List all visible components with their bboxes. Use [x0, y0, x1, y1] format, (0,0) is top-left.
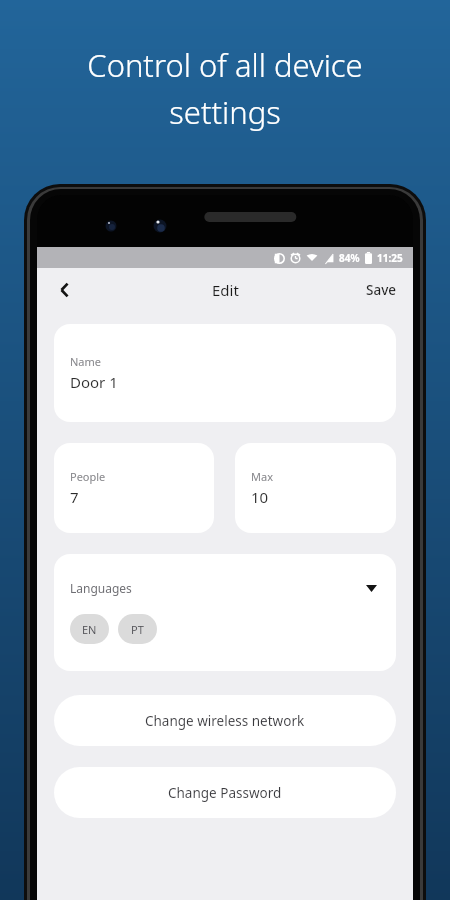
button[interactable]: EN — [70, 614, 109, 644]
button[interactable]: Max — [235, 443, 396, 533]
button[interactable]: Change wireless network — [54, 695, 396, 746]
button[interactable]: Name — [54, 324, 396, 422]
staticText: Door 1 — [70, 372, 118, 392]
staticText: 10 — [251, 487, 269, 507]
staticText: EN — [82, 622, 97, 637]
staticText: 7 — [70, 487, 79, 507]
staticText: 84% — [339, 251, 360, 265]
staticText: Name — [70, 354, 102, 369]
staticText: Max — [251, 469, 273, 484]
button[interactable]: Languages — [54, 554, 396, 671]
staticText: Change Password — [168, 784, 282, 802]
button[interactable]: Back — [48, 273, 82, 307]
staticText: Control of all device — [87, 44, 363, 86]
staticText: People — [70, 469, 106, 484]
staticText: Change wireless network — [145, 712, 305, 730]
button[interactable]: PT — [118, 614, 157, 644]
button[interactable]: Expand languages — [360, 577, 382, 599]
staticText: Edit — [212, 280, 239, 300]
button[interactable]: Save — [358, 274, 405, 306]
staticText: PT — [131, 622, 144, 637]
staticText: Save — [366, 281, 397, 299]
staticText: Languages — [70, 580, 132, 596]
staticText: 11:25 — [377, 251, 403, 265]
staticText: settings — [169, 91, 281, 133]
button[interactable]: People — [54, 443, 214, 533]
button[interactable]: Change Password — [54, 767, 396, 818]
